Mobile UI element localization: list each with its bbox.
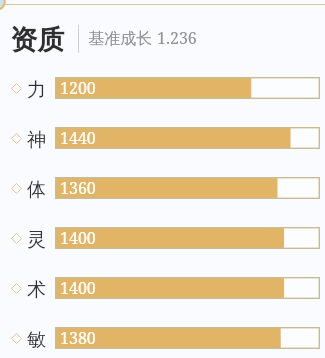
button[interactable]: 术 — [0, 266, 325, 316]
staticText: 术 — [27, 278, 46, 302]
staticText: 1400 — [60, 227, 96, 249]
staticText: 灵 — [27, 228, 46, 252]
staticText: 资质 — [10, 23, 64, 57]
staticText: 基准成长 — [88, 27, 157, 49]
button[interactable]: 力 — [0, 66, 325, 116]
staticText: 体 — [27, 178, 46, 202]
button[interactable]: 体 — [0, 166, 325, 216]
button[interactable]: 敏 — [0, 316, 325, 358]
staticText: 力 — [27, 78, 46, 102]
staticText: 1440 — [60, 127, 96, 149]
staticText: 神 — [27, 128, 46, 152]
staticText: 1380 — [60, 327, 96, 349]
button[interactable]: 灵 — [0, 216, 325, 266]
staticText: 1.236 — [157, 27, 197, 49]
other: Avatar — [0, 0, 24, 24]
button[interactable]: 神 — [0, 116, 325, 166]
staticText: 1200 — [60, 77, 96, 99]
staticText: 敏 — [27, 328, 46, 352]
staticText: 1400 — [60, 277, 96, 299]
staticText: 1360 — [60, 177, 96, 199]
